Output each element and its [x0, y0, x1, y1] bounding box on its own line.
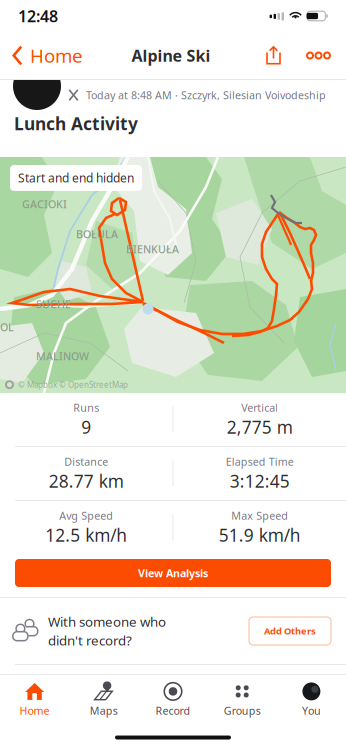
- button[interactable]: Home: [0, 680, 69, 720]
- staticText: 3:12:45: [230, 470, 290, 493]
- staticText: Lunch Activity: [14, 112, 138, 135]
- staticText: 28.77 km: [49, 470, 124, 493]
- staticText: You: [302, 703, 321, 718]
- staticText: Record: [155, 703, 190, 718]
- staticText: 12:48: [18, 5, 58, 27]
- button[interactable]: Maps: [69, 680, 138, 720]
- staticText: Add Others: [264, 625, 316, 637]
- staticText: 9: [81, 416, 91, 439]
- staticText: Home: [30, 43, 83, 68]
- staticText: © Mapbox © OpenStreetMap: [18, 379, 128, 390]
- button[interactable]: Share: [259, 45, 288, 65]
- staticText: MALINOW: [36, 349, 89, 363]
- staticText: Distance: [64, 454, 108, 469]
- staticText: Vertical: [241, 400, 278, 415]
- staticText: SUCHE: [36, 297, 71, 311]
- staticText: 2,775 m: [227, 416, 293, 439]
- staticText: Today at 8:48 AM · Szczyrk, Silesian Voi…: [86, 88, 326, 102]
- staticText: 12.5 km/h: [45, 524, 127, 547]
- staticText: With someone who: [48, 613, 166, 630]
- staticText: didn't record?: [48, 631, 132, 649]
- staticText: BIENKUŁA: [126, 242, 179, 256]
- staticText: Runs: [73, 400, 99, 415]
- staticText: Avg Speed: [59, 508, 113, 523]
- button[interactable]: Groups: [208, 680, 277, 720]
- staticText: Maps: [90, 703, 118, 718]
- staticText: OL: [0, 320, 14, 334]
- staticText: Start and end hidden: [18, 170, 134, 186]
- button[interactable]: View Analysis: [15, 559, 331, 587]
- staticText: Alpine Ski: [131, 45, 210, 66]
- staticText: Elapsed Time: [226, 454, 294, 469]
- staticText: Max Speed: [231, 508, 288, 523]
- staticText: Groups: [224, 703, 261, 718]
- button[interactable]: Home: [0, 35, 83, 76]
- staticText: Home: [20, 703, 50, 718]
- button[interactable]: Add Others: [249, 617, 331, 645]
- staticText: View Analysis: [138, 566, 208, 580]
- staticText: BOŁULA: [76, 227, 118, 241]
- button[interactable]: More options: [298, 41, 339, 70]
- staticText: 51.9 km/h: [219, 524, 301, 547]
- button[interactable]: Record: [138, 680, 208, 720]
- button[interactable]: You: [277, 680, 346, 720]
- staticText: GACIOKI: [22, 197, 67, 211]
